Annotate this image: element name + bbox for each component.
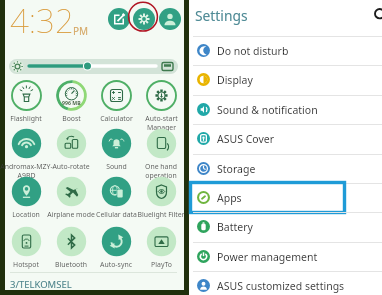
staticText: Storage [217, 162, 256, 176]
staticText: 4:32 [10, 0, 74, 43]
button[interactable]: Power management [189, 242, 382, 271]
button[interactable]: Brightness [9, 59, 178, 74]
staticText: Display [217, 73, 253, 87]
button[interactable]: Airplane mode [42, 176, 100, 224]
button[interactable]: Location [0, 176, 55, 224]
staticText: Bluelight Filter [137, 210, 185, 219]
button[interactable]: Edit [108, 8, 130, 30]
button[interactable]: Battery [189, 212, 382, 241]
button[interactable]: Apps [189, 183, 382, 212]
button[interactable]: Display [189, 65, 382, 94]
button[interactable]: Calculator [87, 80, 145, 128]
staticText: Settings [195, 6, 248, 25]
staticText: Flashlight [10, 114, 42, 123]
button[interactable]: 996 MB [42, 80, 100, 128]
button[interactable]: Andromax-MZY- A9BD [0, 128, 55, 176]
staticText: Auto-sync [100, 260, 132, 269]
staticText: PM [73, 24, 89, 38]
button[interactable]: Do not disturb [189, 36, 382, 65]
button[interactable]: Cellular data [87, 176, 145, 224]
button[interactable]: Sound & notification [189, 95, 382, 124]
button[interactable]: Storage [189, 154, 382, 183]
staticText: Location [12, 210, 40, 219]
staticText: ASUS Cover [217, 132, 275, 146]
staticText: 3/TELKOMSEL [10, 278, 72, 291]
staticText: Calculator [100, 114, 133, 123]
button[interactable]: Account [159, 8, 181, 30]
button[interactable]: ASUS customized settings [189, 271, 382, 295]
button[interactable]: Auto-start Manager [132, 80, 190, 128]
staticText: Sound & notification [217, 103, 318, 117]
staticText: One hand operation [145, 162, 177, 180]
button[interactable]: Auto-rotate [42, 128, 100, 176]
staticText: Cellular data [96, 210, 137, 219]
button[interactable]: One hand operation [132, 128, 190, 176]
button[interactable]: Hotspot [0, 226, 55, 274]
button[interactable]: ASUS Cover [189, 124, 382, 153]
button[interactable]: Bluelight Filter [132, 176, 190, 224]
button[interactable]: PlayTo [132, 226, 190, 274]
button[interactable]: Flashlight [0, 80, 55, 128]
staticText: ASUS customized settings [217, 279, 345, 293]
staticText: Auto-rotate [52, 162, 90, 171]
staticText: Airplane mode [47, 210, 95, 219]
staticText: Auto-start Manager [145, 114, 178, 132]
staticText: Sound [106, 162, 127, 171]
staticText: Bluetooth [55, 260, 87, 269]
button[interactable]: Search [375, 9, 382, 27]
staticText: Power management [217, 250, 318, 264]
staticText: PlayTo [151, 260, 172, 269]
staticText: 996 MB [62, 99, 81, 106]
staticText: Do not disturb [217, 44, 289, 58]
staticText: Boost [62, 114, 81, 123]
staticText: Battery [217, 220, 253, 234]
button[interactable]: Sound [87, 128, 145, 176]
staticText: Apps [217, 191, 242, 205]
staticText: Hotspot [13, 260, 39, 269]
staticText: Andromax-MZY- A9BD [0, 162, 53, 180]
button[interactable]: Settings [133, 8, 155, 30]
button[interactable]: Bluetooth [42, 226, 100, 274]
button[interactable]: Auto-sync [87, 226, 145, 274]
